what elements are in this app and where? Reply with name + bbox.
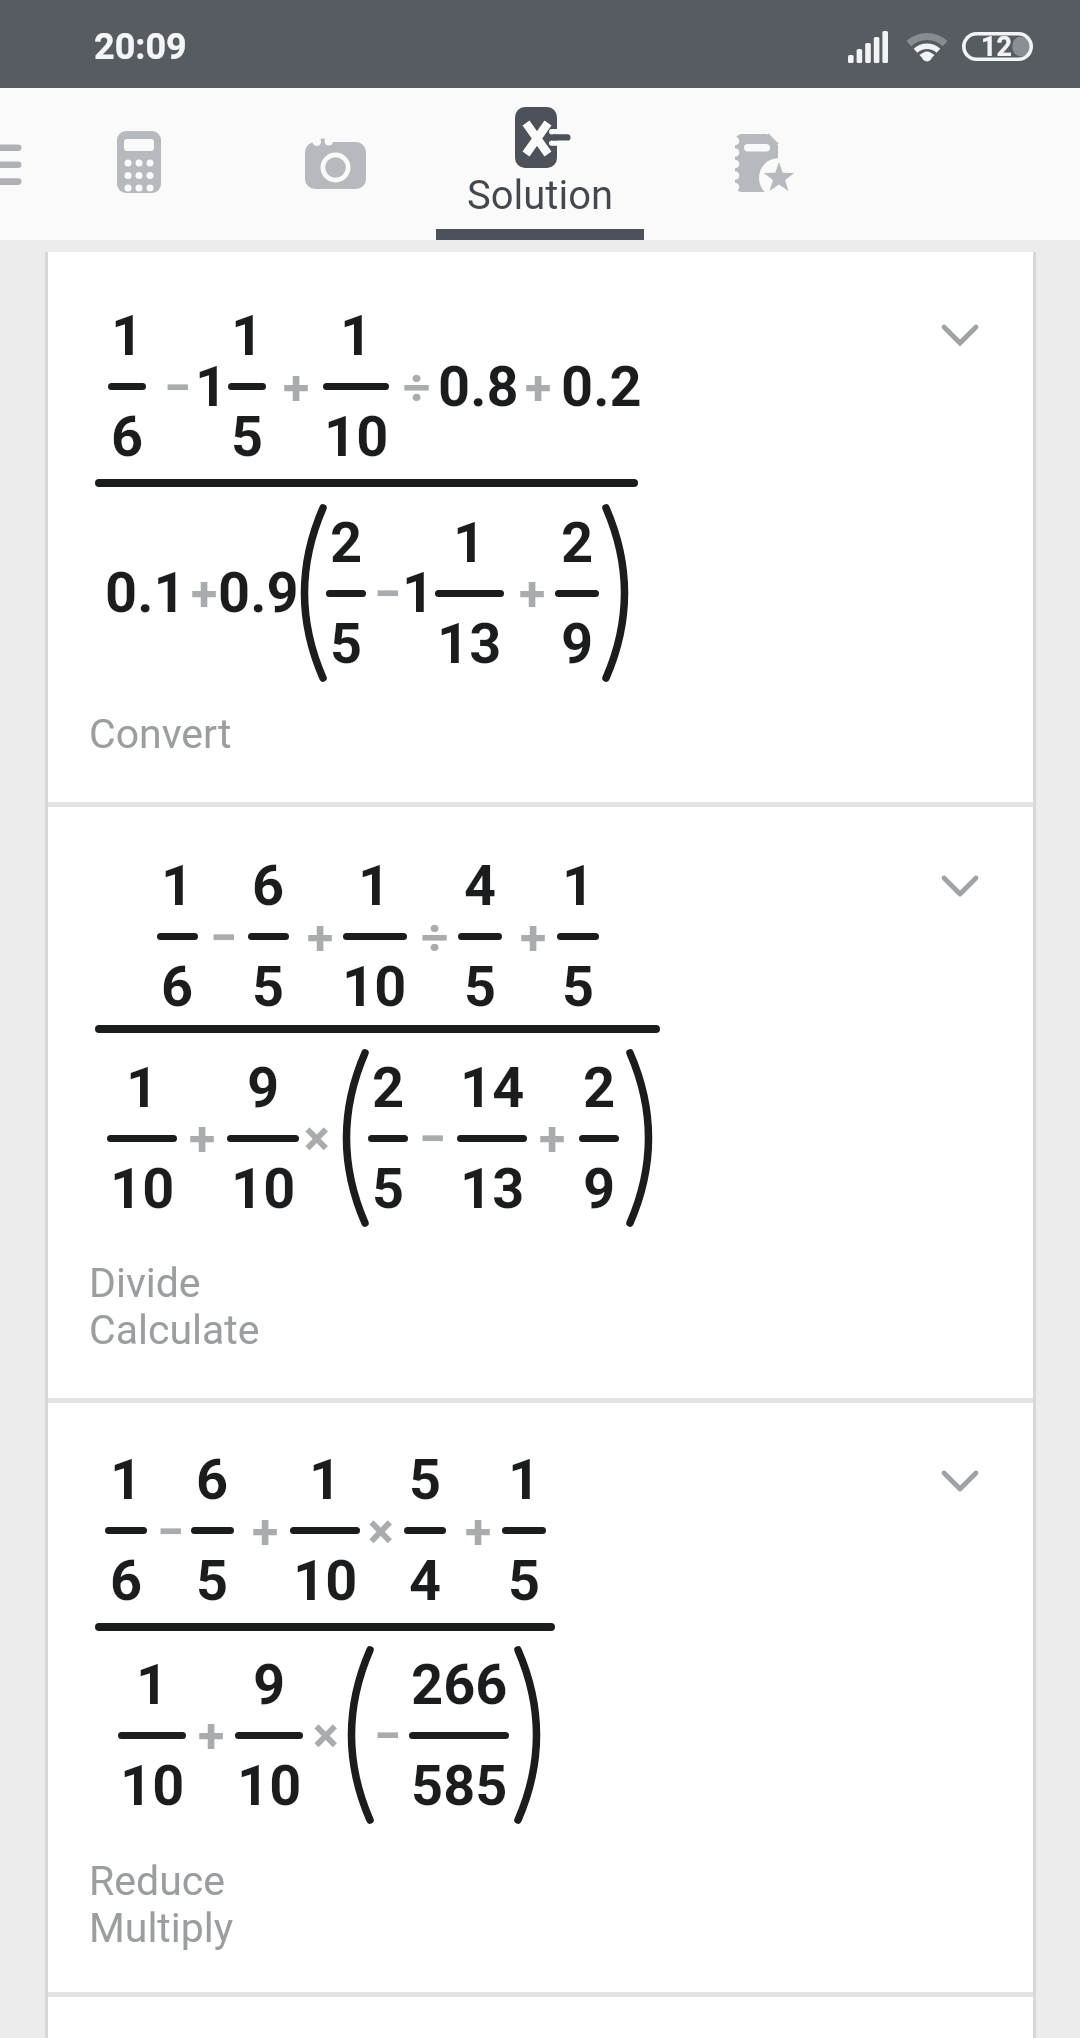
- staticText: 5: [252, 954, 285, 1020]
- staticText: 6: [111, 404, 144, 470]
- staticText: 13: [460, 1156, 525, 1222]
- staticText: 9: [561, 611, 594, 677]
- staticText: 6: [196, 1447, 229, 1513]
- staticText: 1: [508, 1447, 541, 1513]
- staticText: 1: [110, 1447, 143, 1513]
- staticText: 1: [195, 354, 228, 420]
- staticText: Convert: [89, 710, 232, 758]
- staticText: 1: [111, 303, 144, 369]
- button[interactable]: [305, 141, 367, 189]
- staticText: 0.1: [105, 560, 186, 626]
- staticText: ×: [304, 1110, 330, 1166]
- staticText: Calculate: [89, 1306, 260, 1354]
- button[interactable]: [0, 88, 30, 240]
- staticText: 10: [120, 1753, 185, 1819]
- staticText: 1: [136, 1652, 169, 1718]
- staticText: 5: [562, 954, 595, 1020]
- staticText: 6: [110, 1548, 143, 1614]
- staticText: 585: [411, 1753, 508, 1819]
- staticText: +: [465, 1503, 492, 1559]
- staticText: 2: [330, 510, 363, 576]
- staticText: 2: [561, 510, 594, 576]
- staticText: Solution: [467, 172, 614, 219]
- staticText: 20:09: [94, 26, 187, 68]
- staticText: 1: [309, 1447, 342, 1513]
- button[interactable]: [941, 322, 979, 348]
- button[interactable]: Solution: [436, 88, 644, 240]
- staticText: 4: [464, 853, 497, 919]
- staticText: 4: [409, 1548, 442, 1614]
- staticText: 1: [126, 1055, 159, 1121]
- staticText: 10: [110, 1156, 175, 1222]
- staticText: 5: [231, 404, 264, 470]
- staticText: +: [283, 359, 310, 415]
- staticText: Reduce: [89, 1857, 225, 1905]
- staticText: 5: [372, 1156, 405, 1222]
- staticText: +: [191, 565, 218, 621]
- staticText: +: [189, 1110, 216, 1166]
- staticText: 5: [508, 1548, 541, 1614]
- staticText: 266: [411, 1652, 508, 1718]
- staticText: 1: [161, 853, 194, 919]
- staticText: −: [164, 359, 191, 415]
- staticText: −: [157, 1503, 184, 1559]
- staticText: 5: [330, 611, 363, 677]
- staticText: 0.2: [561, 354, 642, 420]
- staticText: ×: [313, 1707, 339, 1763]
- staticText: 10: [293, 1548, 358, 1614]
- staticText: +: [539, 1110, 566, 1166]
- staticText: 6: [252, 853, 285, 919]
- staticText: 0.8: [438, 354, 519, 420]
- staticText: 9: [253, 1652, 286, 1718]
- staticText: 5: [196, 1548, 229, 1614]
- staticText: ×: [368, 1503, 394, 1559]
- button[interactable]: [48, 1403, 1033, 1992]
- button[interactable]: [117, 131, 161, 193]
- staticText: +: [307, 909, 334, 965]
- staticText: 1: [562, 853, 595, 919]
- staticText: 14: [460, 1055, 525, 1121]
- staticText: 10: [231, 1156, 296, 1222]
- staticText: Multiply: [89, 1904, 234, 1952]
- staticText: +: [525, 359, 552, 415]
- staticText: +: [519, 565, 546, 621]
- staticText: ÷: [421, 909, 449, 965]
- staticText: −: [374, 1707, 401, 1763]
- staticText: +: [252, 1503, 279, 1559]
- staticText: 9: [583, 1156, 616, 1222]
- staticText: 2: [372, 1055, 405, 1121]
- staticText: Divide: [89, 1259, 201, 1307]
- staticText: −: [419, 1110, 446, 1166]
- button[interactable]: [48, 252, 1033, 802]
- staticText: 1: [358, 853, 391, 919]
- staticText: 1: [340, 303, 373, 369]
- staticText: 10: [324, 404, 389, 470]
- button[interactable]: [48, 807, 1033, 1398]
- staticText: 9: [247, 1055, 280, 1121]
- staticText: +: [198, 1707, 225, 1763]
- button[interactable]: [941, 1468, 979, 1494]
- staticText: 12: [981, 31, 1012, 63]
- staticText: 0.9: [218, 560, 299, 626]
- staticText: 6: [161, 954, 194, 1020]
- staticText: 5: [464, 954, 497, 1020]
- staticText: 2: [583, 1055, 616, 1121]
- staticText: +: [520, 909, 547, 965]
- staticText: 5: [409, 1447, 442, 1513]
- staticText: −: [210, 909, 237, 965]
- staticText: −: [374, 565, 401, 621]
- button[interactable]: [735, 134, 805, 204]
- staticText: 1: [453, 510, 486, 576]
- staticText: 13: [437, 611, 502, 677]
- staticText: 1: [402, 560, 435, 626]
- staticText: 10: [342, 954, 407, 1020]
- staticText: 10: [237, 1753, 302, 1819]
- staticText: ÷: [403, 359, 431, 415]
- button[interactable]: [941, 873, 979, 899]
- staticText: 1: [231, 303, 264, 369]
